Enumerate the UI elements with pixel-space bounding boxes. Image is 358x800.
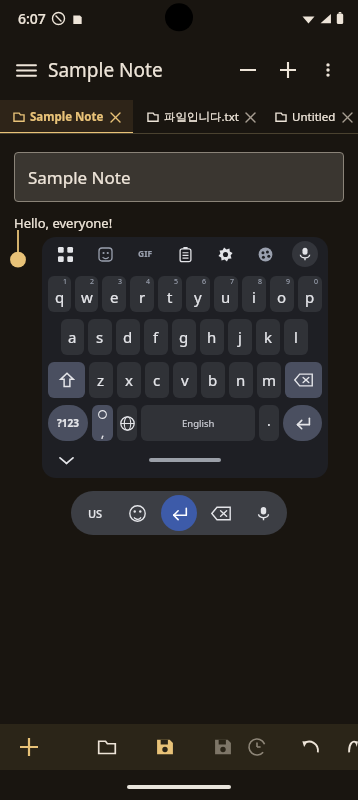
button[interactable]: Menu [8, 52, 44, 88]
staticText: . [267, 411, 271, 430]
staticText: p [305, 287, 315, 307]
button[interactable]: 6 [186, 276, 210, 312]
staticText: t [167, 287, 173, 307]
staticText: d [123, 327, 133, 347]
staticText: 파일입니다.txt [164, 109, 239, 125]
staticText: US [88, 506, 103, 521]
button[interactable]: Voice input [246, 496, 280, 530]
button[interactable]: 파일입니다.txt [133, 100, 268, 134]
button[interactable]: 2 [75, 276, 98, 312]
staticText: 9 [286, 277, 291, 287]
button[interactable]: Save as [206, 730, 240, 764]
button[interactable]: s [88, 319, 112, 355]
staticText: e [110, 287, 119, 307]
button[interactable]: Increase text size [270, 52, 306, 88]
staticText: 2 [90, 277, 95, 287]
button[interactable]: g [172, 319, 196, 355]
button[interactable]: New note [12, 730, 46, 764]
staticText: 1 [63, 277, 68, 287]
button[interactable]: Sample Note [14, 152, 344, 202]
staticText: c [153, 370, 161, 390]
button[interactable]: Voice input [292, 241, 318, 267]
button[interactable]: Backspace [204, 496, 238, 530]
button[interactable]: n [229, 362, 253, 398]
staticText: 6 [202, 277, 207, 287]
button[interactable]: Themes [252, 241, 278, 267]
button[interactable]: More options [310, 52, 346, 88]
button[interactable]: Change language [117, 405, 137, 441]
button[interactable]: 5 [158, 276, 182, 312]
button[interactable]: Shift [48, 362, 85, 398]
button[interactable]: Untitled [268, 100, 358, 134]
staticText: , [101, 424, 105, 440]
staticText: q [55, 287, 65, 307]
button[interactable]: Enter [283, 405, 322, 441]
button[interactable]: f [144, 319, 168, 355]
button[interactable]: Keyboard options [52, 241, 78, 267]
button[interactable]: 7 [214, 276, 238, 312]
button[interactable]: c [145, 362, 169, 398]
button[interactable]: d [116, 319, 140, 355]
button[interactable]: 0 [298, 276, 322, 312]
button[interactable]: x [117, 362, 141, 398]
staticText: a [68, 327, 77, 347]
button[interactable]: a [61, 319, 84, 355]
staticText: n [236, 370, 246, 390]
button[interactable]: History [240, 730, 274, 764]
staticText: Sample Note [30, 109, 104, 125]
button[interactable]: Backspace [285, 362, 322, 398]
button[interactable]: Settings [212, 241, 238, 267]
staticText: 7 [230, 277, 235, 287]
button[interactable]: Open folder [90, 730, 124, 764]
button[interactable]: v [173, 362, 197, 398]
button[interactable]: Emoji [120, 496, 154, 530]
staticText: w [81, 287, 93, 307]
staticText: v [181, 370, 189, 390]
staticText: 0 [314, 277, 319, 287]
button[interactable]: US [78, 496, 112, 530]
button[interactable]: 1 [48, 276, 71, 312]
button[interactable]: j [228, 319, 252, 355]
staticText: s [96, 327, 104, 347]
button[interactable]: Redo [348, 730, 358, 764]
staticText: r [139, 287, 146, 307]
staticText: g [179, 327, 189, 347]
button[interactable]: Clipboard [172, 241, 198, 267]
button[interactable]: 3 [102, 276, 126, 312]
staticText: x [125, 370, 133, 390]
button[interactable]: ?123 [48, 405, 88, 441]
staticText: 5 [174, 277, 179, 287]
button[interactable]: Decrease text size [230, 52, 266, 88]
staticText: m [262, 370, 277, 390]
button[interactable]: 4 [130, 276, 154, 312]
button[interactable]: 8 [242, 276, 266, 312]
staticText: h [207, 327, 217, 347]
staticText: 4 [146, 277, 151, 287]
button[interactable]: h [200, 319, 224, 355]
staticText: u [221, 287, 231, 307]
button[interactable]: 9 [270, 276, 294, 312]
button[interactable]: Sample Note [0, 100, 133, 134]
button[interactable]: k [256, 319, 280, 355]
button[interactable]: GIF [132, 241, 158, 267]
button[interactable]: Undo [294, 730, 328, 764]
staticText: 6:07 [18, 9, 46, 28]
staticText: o [277, 287, 287, 307]
staticText: ?123 [57, 416, 79, 430]
staticText: k [264, 327, 273, 347]
staticText: Untitled [292, 109, 336, 125]
button[interactable]: Hide keyboard [54, 448, 78, 472]
staticText: English [182, 417, 215, 430]
button[interactable]: l [284, 319, 308, 355]
staticText: Hello, everyone! [14, 214, 113, 232]
button[interactable]: Stickers [92, 241, 118, 267]
button[interactable]: Enter [161, 495, 197, 531]
button[interactable]: z [89, 362, 113, 398]
button[interactable]: m [257, 362, 281, 398]
button[interactable]: English [141, 405, 255, 441]
button[interactable]: . [259, 405, 279, 441]
button[interactable]: Emoji and comma [92, 405, 113, 441]
staticText: j [238, 327, 242, 347]
button[interactable]: Save [148, 730, 182, 764]
button[interactable]: b [201, 362, 225, 398]
